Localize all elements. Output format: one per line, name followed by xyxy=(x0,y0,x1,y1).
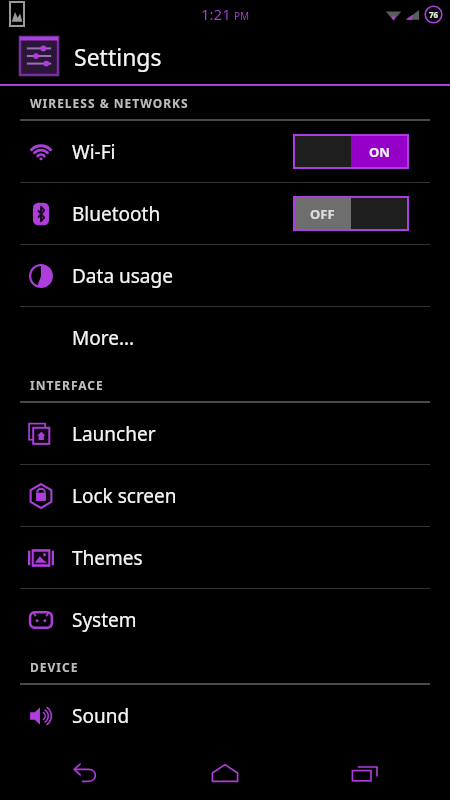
staticText: System xyxy=(72,607,137,633)
staticText: Wi-Fi xyxy=(72,139,116,165)
other: Sound xyxy=(28,703,54,729)
staticText: Bluetooth xyxy=(72,201,161,227)
staticText: Launcher xyxy=(72,421,156,447)
other: Bluetooth xyxy=(28,201,54,227)
staticText: Sound xyxy=(72,703,130,729)
other: Launcher xyxy=(28,421,54,447)
other: Data usage xyxy=(28,263,54,289)
staticText: Lock screen xyxy=(72,483,177,509)
staticText: 76 xyxy=(429,9,439,20)
other: System xyxy=(28,607,54,633)
button[interactable]: Lock screen xyxy=(0,465,450,526)
staticText: OFF xyxy=(310,205,335,223)
button[interactable]: Data usage xyxy=(0,245,450,306)
button[interactable]: More... xyxy=(0,307,450,368)
button[interactable]: OFF xyxy=(294,197,408,230)
button[interactable]: Home xyxy=(170,745,280,800)
staticText: DEVICE xyxy=(30,659,79,675)
staticText: ON xyxy=(369,143,390,161)
staticText: Themes xyxy=(72,545,143,571)
button[interactable]: Launcher xyxy=(0,403,450,464)
staticText: More... xyxy=(72,325,135,351)
button[interactable]: Themes xyxy=(0,527,450,588)
button[interactable]: Recents xyxy=(310,745,420,800)
staticText: WIRELESS & NETWORKS xyxy=(30,95,189,111)
button[interactable]: Back xyxy=(30,745,140,800)
button[interactable]: ON xyxy=(294,135,408,168)
other: Themes xyxy=(28,545,54,571)
other: Wi-Fi xyxy=(28,139,54,165)
staticText: INTERFACE xyxy=(30,377,104,393)
staticText: 1:21 xyxy=(201,4,231,24)
other: Lock screen xyxy=(28,483,54,509)
button[interactable]: Settings xyxy=(0,28,450,84)
button[interactable]: Bluetooth xyxy=(0,183,450,244)
staticText: PM xyxy=(234,9,250,23)
button[interactable]: Wi-Fi xyxy=(0,121,450,182)
staticText: Settings xyxy=(74,41,162,72)
button[interactable]: System xyxy=(0,589,450,650)
button[interactable]: Sound xyxy=(0,685,450,746)
staticText: Data usage xyxy=(72,263,173,289)
